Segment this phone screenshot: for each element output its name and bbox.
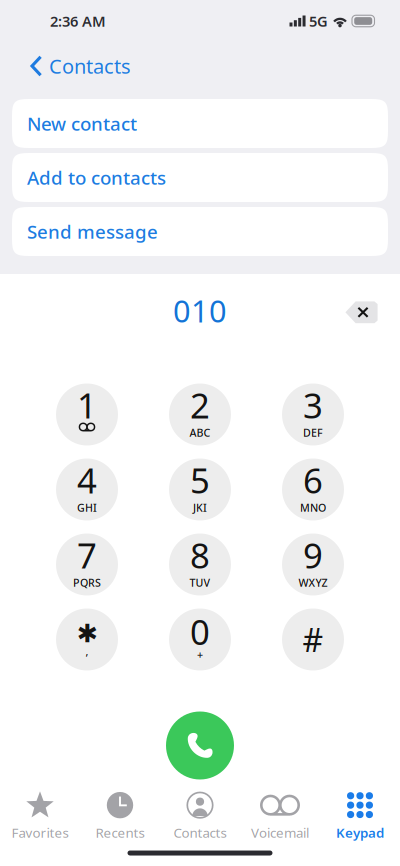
- button[interactable]: 0: [169, 608, 231, 670]
- staticText: 5G: [309, 11, 328, 31]
- staticText: ✱: [76, 619, 97, 648]
- staticText: DEF: [303, 425, 323, 440]
- button[interactable]: Favorites: [0, 792, 80, 841]
- button[interactable]: Keypad: [320, 792, 400, 841]
- staticText: 2:36 AM: [50, 11, 106, 31]
- button[interactable]: Delete: [330, 290, 392, 334]
- button[interactable]: 7: [56, 533, 118, 595]
- staticText: 4: [77, 457, 97, 503]
- staticText: MNO: [300, 500, 326, 515]
- button[interactable]: 2: [169, 383, 231, 445]
- button[interactable]: Contacts: [0, 44, 145, 84]
- button[interactable]: 8: [169, 533, 231, 595]
- staticText: 9: [303, 532, 323, 578]
- button[interactable]: Call: [166, 711, 234, 779]
- staticText: #: [302, 618, 323, 661]
- button[interactable]: #: [282, 608, 344, 670]
- staticText: Favorites: [11, 824, 68, 841]
- staticText: 7: [77, 532, 97, 578]
- staticText: Keypad: [336, 824, 384, 841]
- button[interactable]: ✱: [56, 608, 118, 670]
- button[interactable]: Recents: [80, 792, 160, 841]
- button[interactable]: Add to contacts: [12, 153, 388, 202]
- staticText: Contacts: [173, 824, 226, 841]
- staticText: Voicemail: [251, 824, 309, 841]
- staticText: Contacts: [49, 53, 131, 79]
- staticText: JKI: [193, 500, 207, 515]
- button[interactable]: 4: [56, 458, 118, 520]
- button[interactable]: 3: [282, 383, 344, 445]
- button[interactable]: 6: [282, 458, 344, 520]
- staticText: Send message: [27, 219, 158, 244]
- button[interactable]: Contacts: [160, 792, 240, 841]
- button[interactable]: Send message: [12, 207, 388, 256]
- staticText: WXYZ: [298, 575, 327, 590]
- staticText: 6: [303, 457, 323, 503]
- staticText: 0: [190, 608, 210, 654]
- staticText: +: [197, 647, 203, 662]
- button[interactable]: 1: [56, 383, 118, 445]
- staticText: 1: [77, 382, 97, 428]
- button[interactable]: 5: [169, 458, 231, 520]
- staticText: New contact: [27, 111, 137, 136]
- staticText: TUV: [189, 575, 210, 590]
- button[interactable]: Voicemail: [240, 792, 320, 841]
- staticText: Recents: [95, 824, 144, 841]
- staticText: Add to contacts: [27, 165, 166, 190]
- staticText: 8: [190, 532, 210, 578]
- staticText: 2: [190, 382, 210, 428]
- button[interactable]: 9: [282, 533, 344, 595]
- staticText: 3: [303, 382, 323, 428]
- staticText: ABC: [189, 425, 210, 440]
- staticText: PQRS: [73, 575, 101, 590]
- staticText: 5: [190, 457, 210, 503]
- staticText: 010: [173, 290, 227, 331]
- staticText: GHI: [77, 500, 97, 515]
- staticText: ,: [85, 644, 88, 659]
- button[interactable]: New contact: [12, 99, 388, 148]
